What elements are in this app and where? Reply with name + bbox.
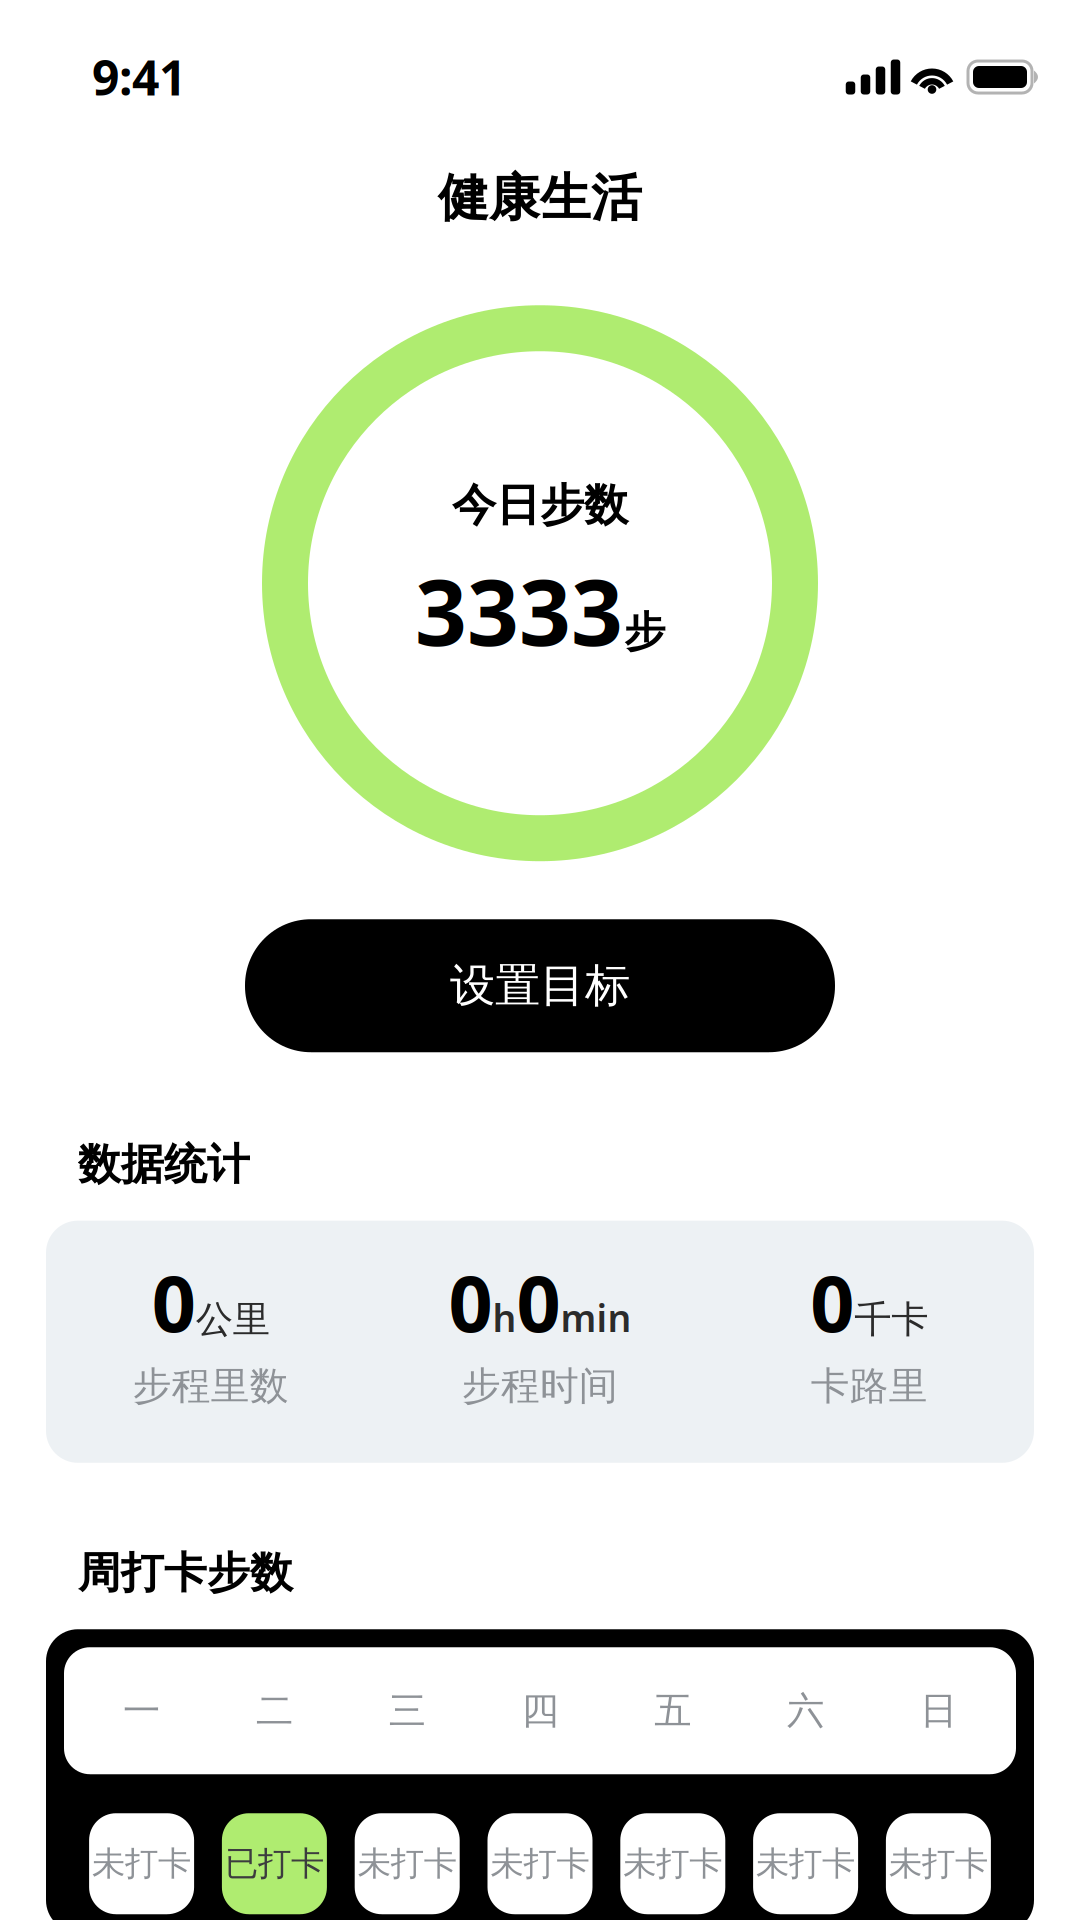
staticText: 健康生活 [438, 167, 642, 229]
staticText: 数据统计 [78, 1138, 250, 1191]
staticText: 今日步数 [452, 478, 628, 532]
staticText: 四 [521, 1688, 558, 1734]
staticText: 日 [920, 1688, 957, 1734]
staticText: 一 [123, 1688, 160, 1734]
button[interactable]: 未打卡 [487, 1813, 592, 1914]
staticText: 六 [787, 1688, 824, 1734]
button[interactable]: 已打卡 [222, 1813, 327, 1914]
staticText: 未打卡 [92, 1843, 191, 1884]
staticText: 已打卡 [225, 1843, 324, 1884]
button[interactable]: 未打卡 [620, 1813, 725, 1914]
staticText: 设置目标 [450, 958, 630, 1014]
staticText: h [492, 1293, 516, 1342]
staticText: 公里 [196, 1297, 270, 1342]
button[interactable]: 未打卡 [753, 1813, 858, 1914]
button[interactable]: 未打卡 [89, 1813, 194, 1914]
staticText: 0 [516, 1251, 560, 1353]
button[interactable]: 设置目标 [245, 919, 835, 1052]
staticText: 9:41 [92, 45, 186, 109]
staticText: 步 [624, 606, 665, 657]
button[interactable]: 未打卡 [886, 1813, 991, 1914]
staticText: 未打卡 [623, 1843, 722, 1884]
button[interactable]: 未打卡 [355, 1813, 460, 1914]
staticText: 3333 [415, 550, 623, 671]
staticText: 周打卡步数 [78, 1547, 293, 1599]
staticText: 千卡 [854, 1297, 928, 1342]
staticText: 步程时间 [462, 1362, 618, 1410]
staticText: 未打卡 [490, 1843, 589, 1884]
staticText: 三 [389, 1688, 426, 1734]
staticText: 未打卡 [889, 1843, 988, 1884]
staticText: 步程里数 [133, 1362, 289, 1410]
staticText: 0 [448, 1251, 492, 1353]
staticText: 0 [152, 1251, 196, 1353]
staticText: 0 [810, 1251, 854, 1353]
staticText: 未打卡 [358, 1843, 457, 1884]
staticText: 卡路里 [811, 1362, 928, 1410]
staticText: 二 [256, 1688, 293, 1734]
staticText: 五 [654, 1688, 691, 1734]
staticText: min [560, 1293, 631, 1342]
staticText: 未打卡 [756, 1843, 855, 1884]
